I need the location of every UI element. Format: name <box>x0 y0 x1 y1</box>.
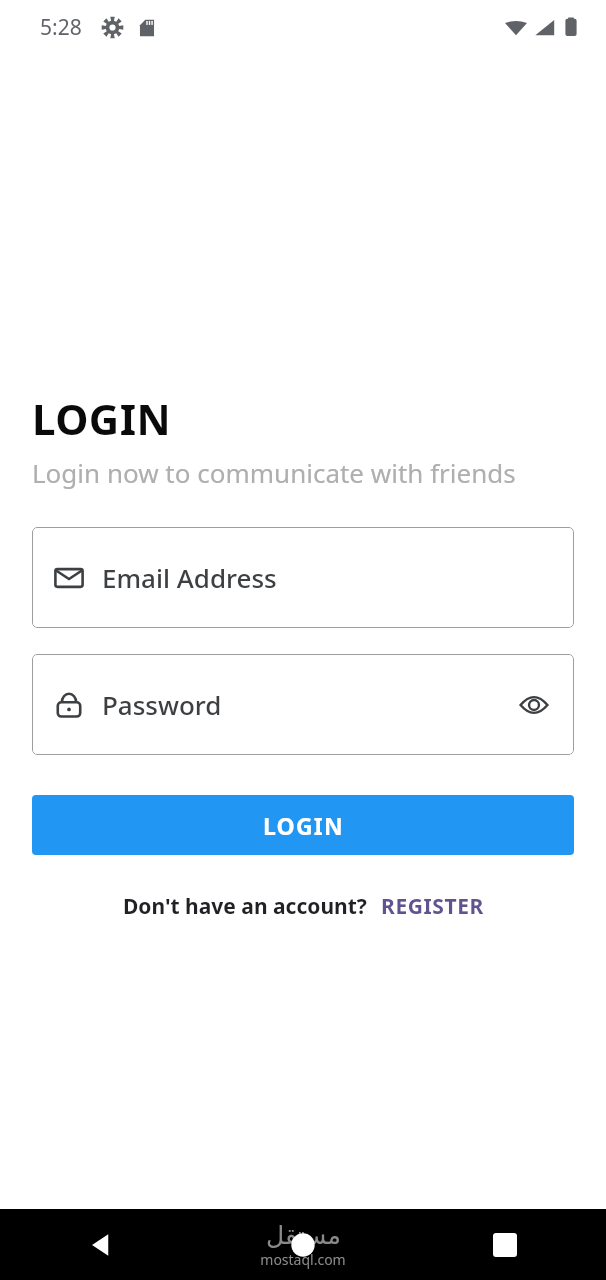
staticText: REGISTER <box>381 892 484 921</box>
button[interactable]: Show password <box>516 687 552 723</box>
button[interactable]: Back <box>0 1209 202 1280</box>
staticText: Password <box>102 687 222 722</box>
staticText: mostaql.com <box>260 1250 346 1269</box>
staticText: LOGIN <box>263 810 344 841</box>
staticText: 5:28 <box>40 13 82 42</box>
button[interactable]: REGISTER <box>381 892 484 921</box>
staticText: LOGIN <box>32 390 172 447</box>
button[interactable]: Email Address <box>32 527 574 628</box>
staticText: Don't have an account? <box>123 892 367 921</box>
staticText: Email Address <box>102 560 277 595</box>
button[interactable]: Password <box>32 654 574 755</box>
button[interactable]: LOGIN <box>32 795 574 855</box>
button[interactable]: Recent apps <box>404 1209 606 1280</box>
button[interactable]: Home <box>202 1209 404 1280</box>
staticText: مستقل <box>266 1221 341 1250</box>
staticText: Login now to communicate with friends <box>32 455 516 490</box>
